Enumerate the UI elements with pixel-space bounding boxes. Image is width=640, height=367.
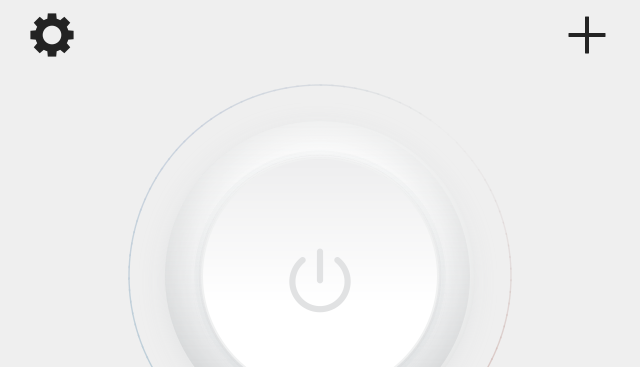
button[interactable]: Settings xyxy=(22,5,82,65)
button[interactable]: Add device xyxy=(557,5,617,65)
